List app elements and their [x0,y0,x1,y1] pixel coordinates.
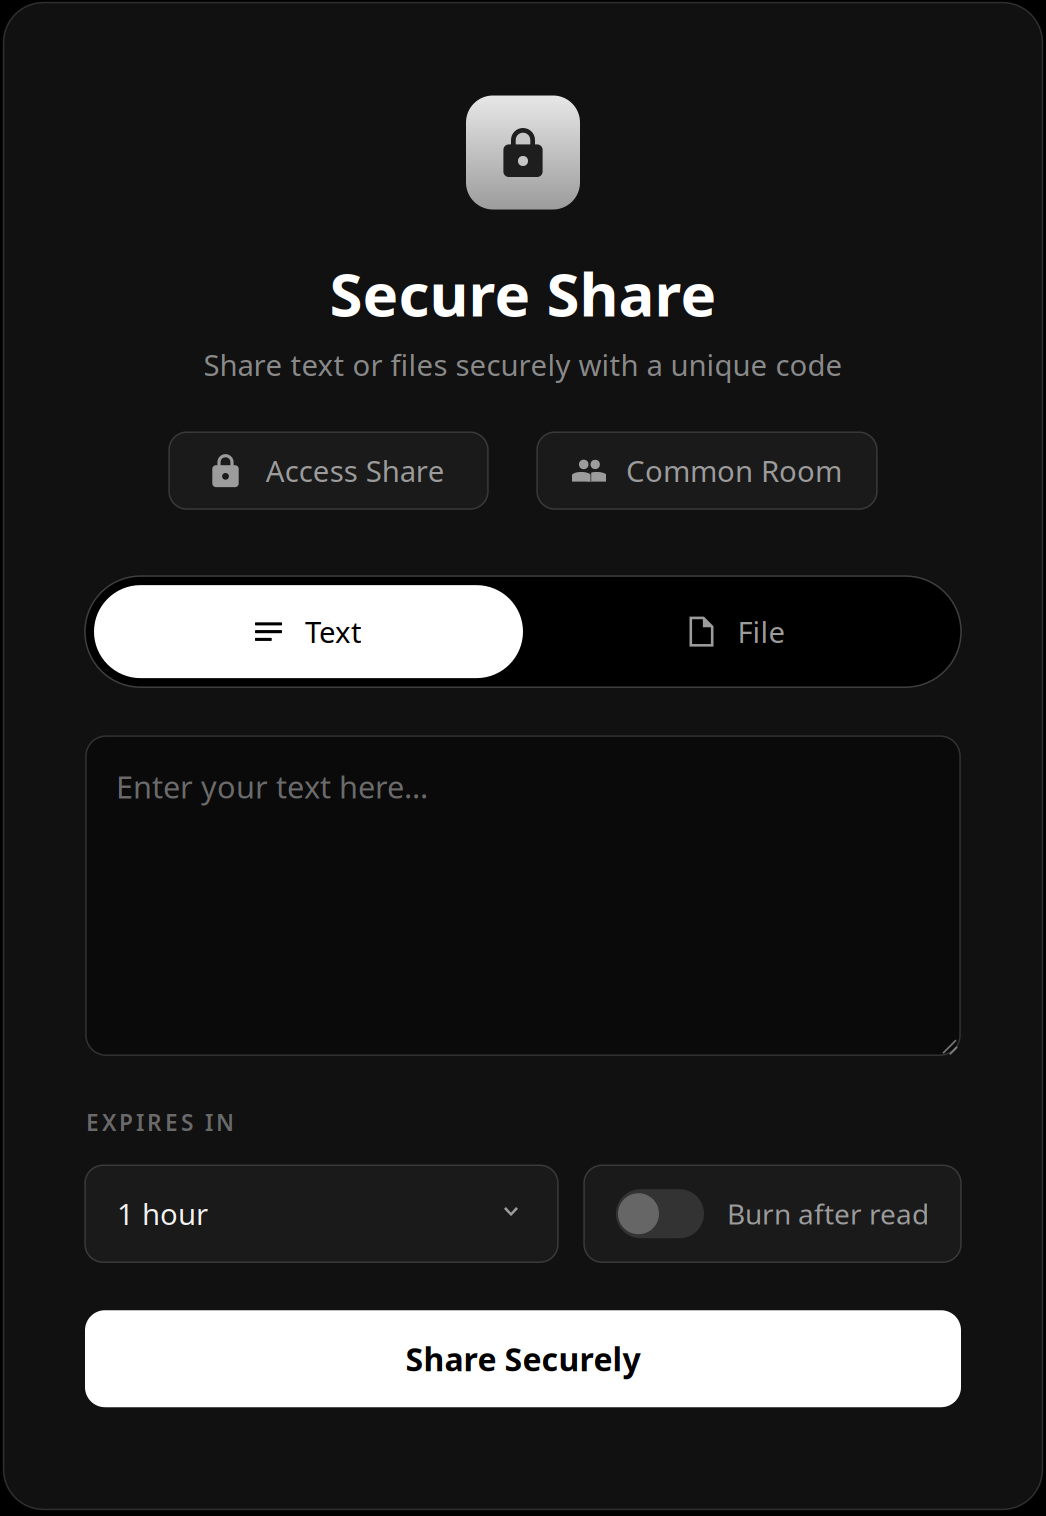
button[interactable]: 1 hour [85,1165,558,1262]
button[interactable]: Text [94,585,523,678]
staticText: File [737,612,785,651]
staticText: Share text or files securely with a uniq… [203,345,842,384]
staticText: Text [305,612,362,651]
staticText: Share Securely [405,1337,640,1380]
staticText: EXPIRES IN [86,1107,234,1137]
button[interactable]: Common Room [537,432,877,509]
staticText: Burn after read [727,1195,929,1232]
staticText: Secure Share [329,253,716,333]
staticText: Common Room [626,451,842,490]
staticText: 1 hour [117,1194,208,1233]
button[interactable]: Share Securely [85,1310,961,1407]
staticText: Access Share [266,451,445,490]
button[interactable]: Access Share [169,432,488,509]
button[interactable]: File [523,585,952,678]
staticText: Enter your text here... [116,766,428,807]
button[interactable]: Burn after read [584,1165,961,1262]
